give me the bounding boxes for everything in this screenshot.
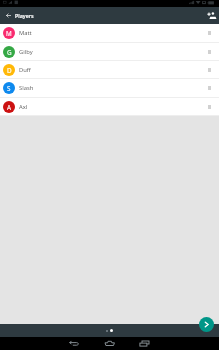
button[interactable]: A [0,98,219,116]
button[interactable]: Home [73,337,146,350]
button[interactable]: Reorder [202,26,216,40]
button[interactable]: Recent apps [146,337,219,350]
button[interactable]: M [0,24,219,43]
staticText: Axl [19,103,28,111]
button[interactable]: Reorder [202,63,216,77]
staticText: G [7,48,12,57]
button[interactable]: Reorder [202,100,216,114]
staticText: Gilby [19,48,33,56]
button[interactable]: S [0,79,219,98]
button[interactable]: Add player [203,7,219,24]
staticText: A [7,103,12,112]
staticText: Matt [19,29,32,37]
button[interactable]: Next [199,317,214,332]
staticText: Slash [19,84,34,92]
staticText: M [6,29,12,38]
button[interactable]: G [0,43,219,61]
button[interactable]: Back [0,337,73,350]
button[interactable]: Back [0,7,17,24]
staticText: Players [15,12,34,19]
button[interactable]: D [0,61,219,79]
staticText: Duff [19,66,31,74]
staticText: S [7,84,11,93]
button[interactable]: Reorder [202,81,216,95]
staticText: D [7,66,12,75]
button[interactable]: Reorder [202,45,216,59]
